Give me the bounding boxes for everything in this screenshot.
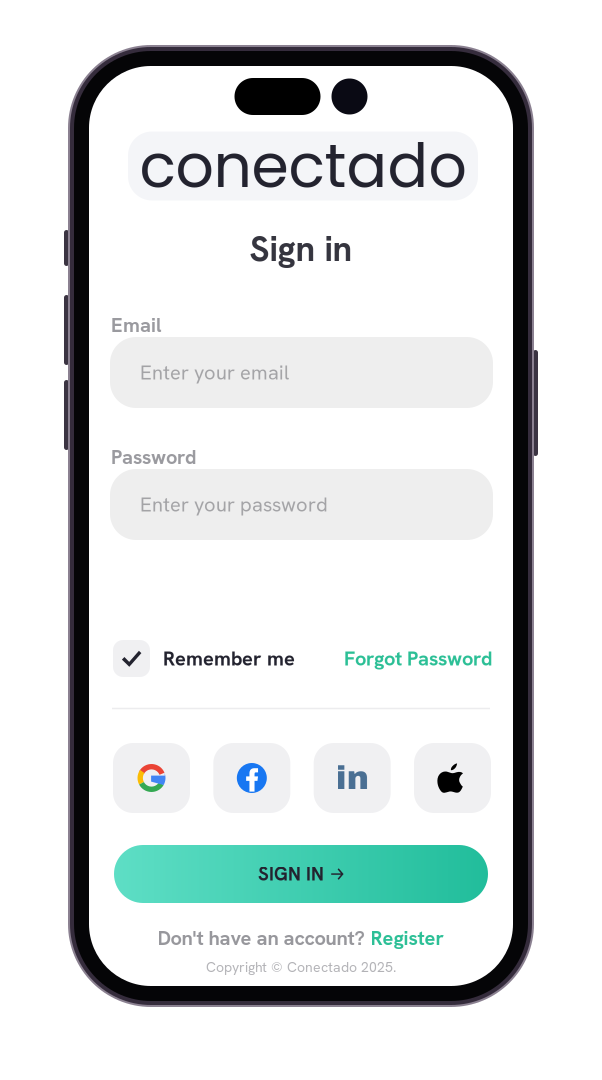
button[interactable]: SIGN IN — [114, 845, 488, 903]
staticText: in — [336, 760, 369, 796]
staticText: Sign in — [249, 226, 352, 272]
button[interactable]: Sign in with Google — [113, 743, 190, 813]
button[interactable]: Register — [370, 925, 444, 951]
button[interactable]: Sign in with LinkedIn — [314, 743, 391, 813]
staticText: Forgot Password — [344, 645, 492, 672]
button[interactable]: Sign in with Facebook — [213, 743, 290, 813]
staticText: Register — [370, 925, 444, 951]
button[interactable]: Enter your password — [110, 469, 493, 540]
staticText: Enter your email — [140, 359, 289, 386]
staticText: Don't have an account? — [157, 925, 364, 951]
button[interactable]: Forgot Password — [344, 645, 492, 672]
staticText: SIGN IN — [258, 862, 324, 886]
staticText: Email — [111, 312, 162, 338]
staticText: conectado — [139, 124, 466, 208]
staticText: Copyright © Conectado 2025. — [206, 958, 396, 976]
staticText: Remember me — [163, 645, 295, 672]
staticText: Password — [111, 444, 196, 470]
staticText: Enter your password — [140, 491, 328, 518]
button[interactable]: Enter your email — [110, 337, 493, 408]
button[interactable]: Remember me — [113, 640, 295, 677]
button[interactable]: Sign in with Apple — [414, 743, 491, 813]
